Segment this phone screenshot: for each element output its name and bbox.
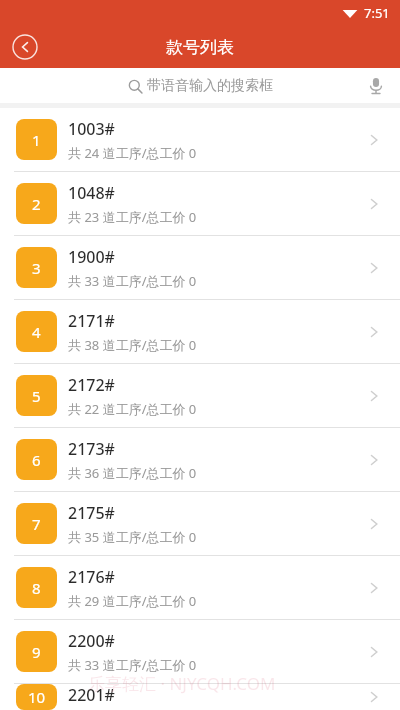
staticText: 2171# <box>68 310 115 332</box>
staticText: 7:51 <box>364 4 390 22</box>
staticText: 共 29 道工序/总工价 0 <box>68 592 197 610</box>
button[interactable]: 5 <box>0 364 400 427</box>
staticText: 4 <box>32 322 41 342</box>
staticText: 2172# <box>68 374 115 396</box>
staticText: 2201# <box>68 684 115 706</box>
staticText: 7 <box>32 514 41 534</box>
staticText: 8 <box>32 578 41 598</box>
staticText: 10 <box>28 687 46 707</box>
staticText: 乐享轻汇 · NJYCQH.COM <box>88 672 276 695</box>
button[interactable]: Back <box>8 30 42 64</box>
button[interactable]: 带语音输入的搜索框 <box>0 68 400 103</box>
staticText: 3 <box>32 258 41 278</box>
button[interactable]: 9 <box>0 620 400 683</box>
staticText: 共 33 道工序/总工价 0 <box>68 656 197 674</box>
staticText: 2173# <box>68 438 115 460</box>
staticText: 2175# <box>68 502 115 524</box>
button[interactable]: 8 <box>0 556 400 619</box>
staticText: 1 <box>32 130 41 150</box>
staticText: 1048# <box>68 182 115 204</box>
staticText: 共 35 道工序/总工价 0 <box>68 528 197 546</box>
staticText: 款号列表 <box>166 37 234 58</box>
staticText: 9 <box>32 642 41 662</box>
staticText: 共 23 道工序/总工价 0 <box>68 208 197 226</box>
button[interactable]: Voice input <box>362 72 390 100</box>
staticText: 带语音输入的搜索框 <box>147 77 273 95</box>
button[interactable]: 7 <box>0 492 400 555</box>
button[interactable]: 1 <box>0 108 400 171</box>
button[interactable]: 4 <box>0 300 400 363</box>
staticText: 1003# <box>68 118 115 140</box>
button[interactable]: 6 <box>0 428 400 491</box>
staticText: 共 22 道工序/总工价 0 <box>68 400 197 418</box>
button[interactable]: 3 <box>0 236 400 299</box>
staticText: 5 <box>32 386 41 406</box>
staticText: 共 38 道工序/总工价 0 <box>68 336 197 354</box>
staticText: 共 24 道工序/总工价 0 <box>68 144 197 162</box>
staticText: 2 <box>32 194 41 214</box>
staticText: 6 <box>32 450 41 470</box>
button[interactable]: 10 <box>0 684 400 710</box>
staticText: 1900# <box>68 246 115 268</box>
staticText: 共 33 道工序/总工价 0 <box>68 272 197 290</box>
staticText: 2200# <box>68 630 115 652</box>
staticText: 共 36 道工序/总工价 0 <box>68 464 197 482</box>
staticText: 2176# <box>68 566 115 588</box>
button[interactable]: 2 <box>0 172 400 235</box>
